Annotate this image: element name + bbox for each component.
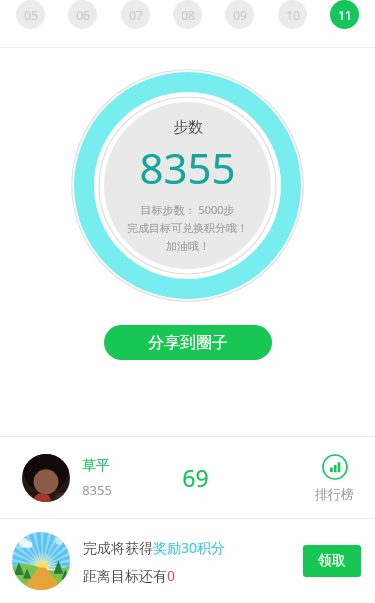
- staticText: 完成目标可兑换积分哦！: [127, 221, 248, 235]
- staticText: 08: [181, 7, 195, 23]
- staticText: 09: [233, 7, 247, 23]
- staticText: 10: [286, 7, 300, 23]
- button[interactable]: 05: [16, 0, 45, 29]
- staticText: 加油哦！: [166, 239, 210, 253]
- staticText: 8355: [82, 481, 112, 499]
- button[interactable]: 07: [121, 0, 150, 29]
- staticText: 69: [182, 462, 209, 493]
- staticText: 分享到圈子: [148, 333, 228, 353]
- staticText: 排行榜: [315, 486, 354, 502]
- staticText: 07: [129, 7, 143, 23]
- staticText: 11: [338, 7, 352, 23]
- button[interactable]: 排行榜: [312, 451, 357, 505]
- staticText: 距离目标还有0: [83, 566, 176, 585]
- button[interactable]: 06: [68, 0, 97, 29]
- button[interactable]: 领取: [303, 545, 361, 577]
- button[interactable]: 分享到圈子: [104, 325, 272, 360]
- button[interactable]: 08: [173, 0, 202, 29]
- staticText: 8355: [139, 139, 236, 196]
- staticText: 目标步数： 5000步: [140, 202, 235, 217]
- staticText: 05: [24, 7, 38, 23]
- button[interactable]: 09: [225, 0, 254, 29]
- button[interactable]: 10: [278, 0, 307, 29]
- button[interactable]: 草平: [0, 437, 375, 518]
- staticText: 完成将获得奖励30积分: [83, 538, 226, 557]
- staticText: 领取: [318, 552, 346, 570]
- button[interactable]: 11: [330, 0, 359, 29]
- staticText: 06: [76, 7, 90, 23]
- staticText: 草平: [82, 457, 110, 475]
- staticText: 步数: [173, 118, 203, 137]
